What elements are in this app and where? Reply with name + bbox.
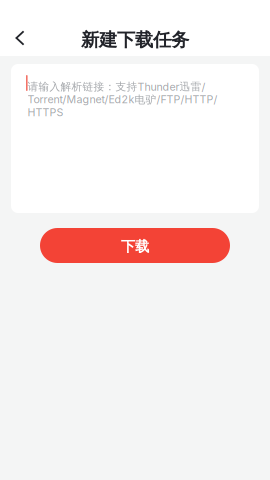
staticText: 请输入解析链接：支持Thunder迅雷/Torrent/Magnet/Ed2k电… (28, 80, 218, 119)
button[interactable]: 请输入解析链接：支持Thunder迅雷/Torrent/Magnet/Ed2k电… (11, 64, 259, 213)
button[interactable]: 下载 (40, 228, 230, 263)
button[interactable]: Back (4, 22, 36, 56)
staticText: 新建下载任务 (81, 28, 189, 51)
staticText: 下载 (121, 237, 149, 255)
